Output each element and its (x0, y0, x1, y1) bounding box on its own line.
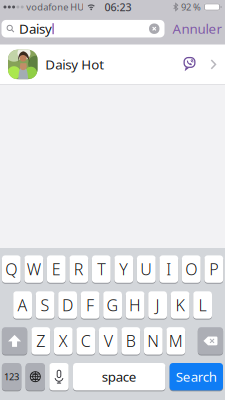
button[interactable]: Next keyboard (26, 363, 45, 390)
button[interactable]: J (148, 291, 167, 319)
staticText: S (41, 294, 50, 316)
staticText: Daisy Hot (45, 56, 104, 73)
staticText: V (104, 330, 113, 351)
staticText: A (18, 294, 28, 316)
button[interactable]: Search field (1, 20, 164, 37)
button[interactable]: Z (31, 327, 50, 355)
staticText: Z (36, 330, 45, 351)
button[interactable]: U (137, 255, 156, 283)
staticText: R (74, 258, 84, 280)
button[interactable]: T (92, 255, 111, 283)
staticText: X (59, 330, 68, 351)
button[interactable]: X (54, 327, 73, 355)
staticText: P (209, 258, 218, 280)
button[interactable]: Q (2, 255, 21, 283)
staticText: F (86, 294, 94, 316)
button[interactable]: D (58, 291, 77, 319)
button[interactable]: S (36, 291, 54, 319)
staticText: Y (119, 258, 128, 280)
staticText: W (27, 258, 41, 280)
button[interactable]: M (166, 327, 185, 355)
staticText: L (199, 294, 207, 316)
button[interactable]: Shift (2, 327, 27, 355)
button[interactable]: F (81, 291, 99, 319)
staticText: I (166, 258, 171, 280)
button[interactable]: Dictate (49, 363, 69, 390)
button[interactable]: C (76, 327, 95, 355)
staticText: 06:23 (105, 0, 132, 14)
staticText: N (147, 330, 159, 351)
staticText: O (185, 258, 197, 280)
button[interactable]: Search (170, 363, 223, 390)
button[interactable]: W (24, 255, 43, 283)
staticText: Search (176, 368, 217, 385)
button[interactable]: Clear text (149, 23, 159, 34)
button[interactable]: H (126, 291, 144, 319)
button[interactable]: V (99, 327, 118, 355)
button[interactable]: K (171, 291, 189, 319)
button[interactable]: E (47, 255, 66, 283)
button[interactable]: Delete (198, 327, 223, 355)
staticText: 123 (4, 370, 19, 383)
button[interactable]: space (73, 363, 165, 390)
staticText: J (156, 294, 160, 316)
staticText: D (62, 294, 73, 316)
staticText: Daisy (19, 20, 52, 37)
staticText: vodafone HU (26, 1, 84, 13)
staticText: M (169, 330, 183, 351)
staticText: K (176, 294, 185, 316)
staticText: space (102, 368, 137, 385)
staticText: G (107, 294, 119, 316)
button[interactable]: Daisy Hot (0, 45, 225, 84)
button[interactable]: N (144, 327, 163, 355)
staticText: 92 % (181, 1, 201, 13)
button[interactable]: O (182, 255, 201, 283)
button[interactable]: Annuler (172, 20, 222, 37)
staticText: U (140, 258, 152, 280)
staticText: E (52, 258, 61, 280)
button[interactable]: Viber call (181, 55, 197, 74)
button[interactable]: L (193, 291, 212, 319)
button[interactable]: Y (114, 255, 133, 283)
staticText: Q (5, 258, 17, 280)
button[interactable]: I (159, 255, 178, 283)
button[interactable]: R (69, 255, 88, 283)
button[interactable]: G (103, 291, 122, 319)
staticText: C (81, 330, 91, 351)
button[interactable]: B (121, 327, 140, 355)
button[interactable]: Numbers (2, 363, 21, 390)
button[interactable]: P (204, 255, 223, 283)
staticText: Annuler (172, 20, 222, 37)
staticText: B (126, 330, 136, 351)
staticText: H (129, 294, 141, 316)
button[interactable]: A (13, 291, 32, 319)
staticText: T (97, 258, 105, 280)
